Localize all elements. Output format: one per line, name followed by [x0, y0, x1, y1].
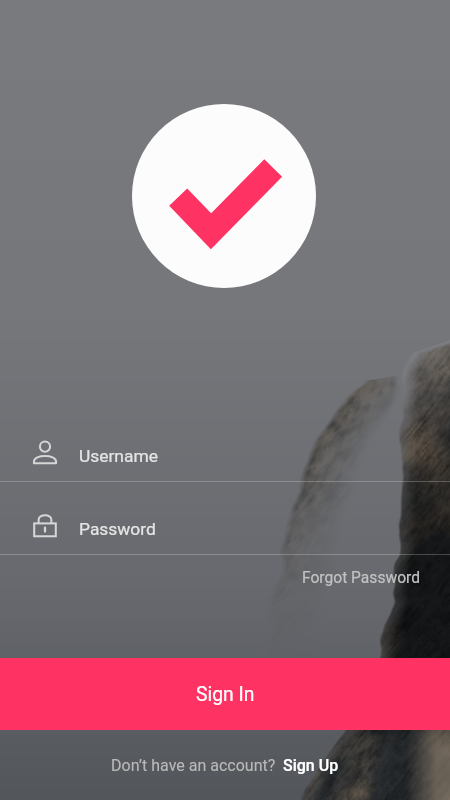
button[interactable]: Forgot Password: [0, 558, 450, 598]
staticText: Password: [79, 519, 156, 539]
staticText: Forgot Password: [302, 569, 420, 587]
button[interactable]: Sign Up: [283, 756, 339, 775]
staticText: Sign In: [196, 683, 255, 706]
button[interactable]: Sign In: [0, 658, 450, 730]
button[interactable]: Password: [0, 498, 450, 560]
staticText: Username: [79, 446, 158, 466]
staticText: Sign Up: [283, 756, 339, 775]
staticText: Don’t have an account?: [111, 756, 276, 775]
button[interactable]: Username: [0, 425, 450, 487]
